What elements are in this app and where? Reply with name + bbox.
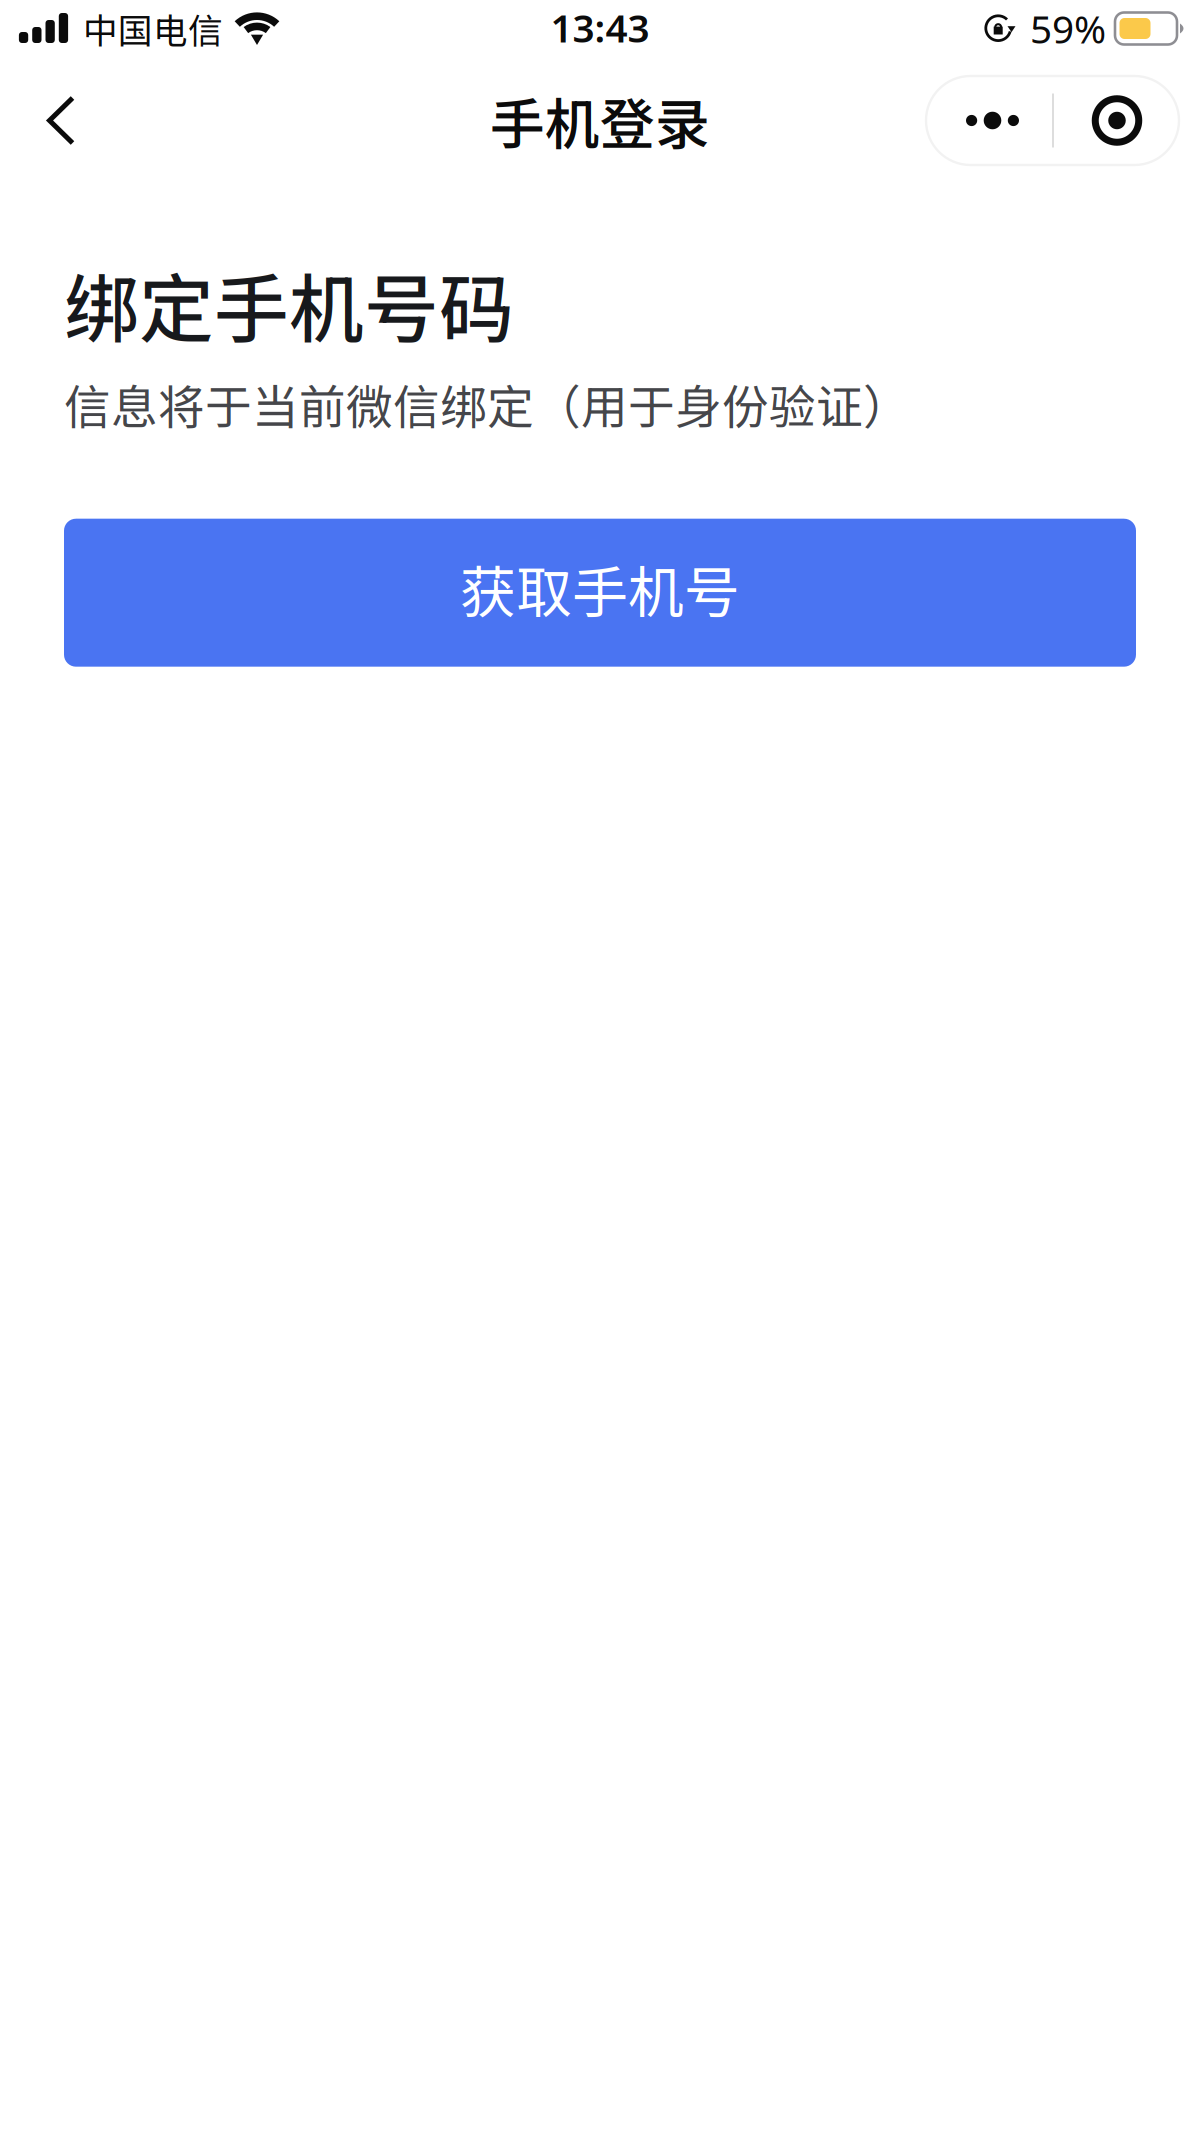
staticText: 13:43 (550, 2, 649, 53)
button[interactable]: 更多 (925, 76, 1052, 165)
staticText: 59% (1030, 3, 1106, 54)
staticText: 中国电信 (83, 3, 223, 54)
staticText: 获取手机号 (460, 548, 740, 629)
staticText: 信息将于当前微信绑定（用于身份验证） (64, 370, 910, 438)
staticText: 绑定手机号码 (64, 250, 514, 358)
button[interactable]: 获取手机号 (64, 519, 1136, 667)
staticText: 手机登录 (490, 81, 710, 160)
button[interactable]: 返回 (23, 57, 99, 184)
button[interactable]: 关闭 (1054, 76, 1180, 165)
